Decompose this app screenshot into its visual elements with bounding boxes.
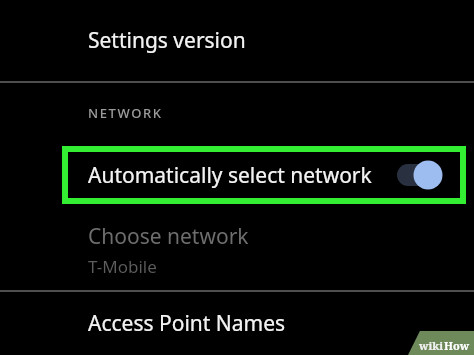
button[interactable]: Settings version	[0, 0, 474, 81]
staticText: Access Point Names	[88, 309, 286, 338]
staticText: Settings version	[88, 26, 246, 55]
button[interactable]: Automatically select network	[62, 146, 466, 204]
staticText: Automatically select network	[88, 161, 372, 190]
staticText: Choose network	[88, 222, 249, 251]
other: Automatically select network toggle, on	[397, 160, 443, 190]
button[interactable]: Access Point Names	[0, 292, 474, 355]
staticText: NETWORK	[88, 104, 163, 122]
staticText: wiki	[419, 338, 444, 353]
staticText: How	[444, 338, 470, 353]
staticText: T-Mobile	[88, 255, 157, 278]
button[interactable]: Choose network	[0, 210, 474, 290]
